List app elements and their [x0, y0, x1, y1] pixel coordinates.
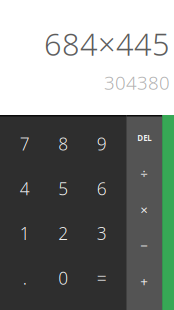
button[interactable]: Delete [126, 120, 162, 156]
staticText: 3 [97, 222, 107, 245]
staticText: + [140, 272, 148, 290]
staticText: 6 [97, 177, 107, 200]
staticText: 304380 [104, 70, 170, 95]
button[interactable]: = [82, 256, 121, 300]
staticText: 4 [20, 177, 30, 200]
staticText: 684×445 [44, 23, 170, 64]
staticText: × [140, 201, 148, 218]
button[interactable]: 3 [82, 211, 121, 256]
staticText: 1 [20, 222, 30, 245]
button[interactable]: 7 [5, 121, 44, 166]
button[interactable]: 6 [82, 166, 121, 211]
staticText: ÷ [140, 165, 148, 182]
button[interactable]: . [5, 256, 44, 300]
staticText: = [97, 266, 107, 289]
staticText: 2 [58, 222, 68, 245]
button[interactable]: 0 [44, 256, 82, 300]
staticText: 7 [20, 132, 30, 155]
button[interactable]: 8 [44, 121, 82, 166]
button[interactable]: Subtract [126, 227, 162, 263]
staticText: 9 [97, 132, 107, 155]
button[interactable]: Multiply [126, 192, 162, 227]
staticText: 5 [58, 177, 68, 200]
button[interactable]: Divide [126, 156, 162, 192]
staticText: 8 [58, 132, 68, 155]
staticText: DEL [137, 133, 151, 143]
button[interactable]: 5 [44, 166, 82, 211]
button[interactable]: 4 [5, 166, 44, 211]
staticText: . [23, 266, 27, 289]
staticText: 0 [58, 266, 68, 289]
button[interactable]: 9 [82, 121, 121, 166]
button[interactable]: 2 [44, 211, 82, 256]
button[interactable]: 1 [5, 211, 44, 256]
button[interactable]: Add [126, 263, 162, 299]
staticText: − [140, 236, 148, 254]
